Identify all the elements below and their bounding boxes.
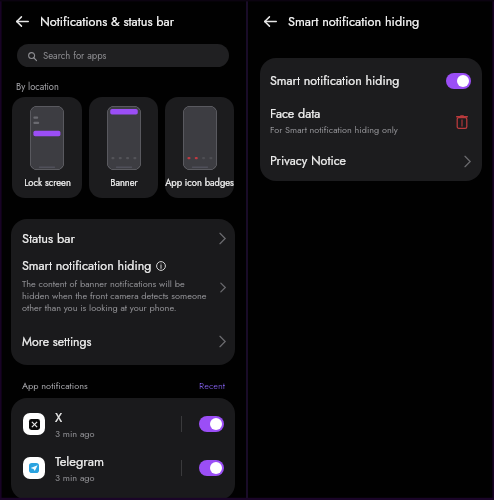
button[interactable]: X — [11, 402, 235, 446]
button[interactable]: Privacy Notice — [260, 141, 482, 181]
button[interactable]: Recent — [199, 379, 226, 392]
staticText: Search for apps — [43, 49, 107, 63]
staticText: Privacy Notice — [270, 152, 464, 170]
staticText: More settings — [22, 333, 219, 351]
button[interactable]: Toggle — [199, 460, 224, 476]
staticText: App notifications — [22, 379, 199, 392]
button[interactable]: Telegram — [11, 446, 235, 490]
staticText: X — [55, 408, 63, 427]
staticText: Telegram — [55, 452, 104, 471]
staticText: Recent — [199, 379, 226, 392]
staticText: Lock screen — [24, 176, 71, 190]
button[interactable]: Lock screen — [12, 97, 82, 198]
staticText: Smart notification hiding — [22, 257, 152, 275]
button[interactable]: Smart notification hiding — [260, 58, 482, 103]
staticText: Smart notification hiding — [288, 12, 420, 30]
staticText: Face data — [270, 105, 321, 123]
staticText: 3 min ago — [55, 427, 95, 440]
button[interactable]: App icon badges — [165, 97, 234, 198]
button[interactable]: More settings — [11, 318, 235, 365]
staticText: The content of banner notifications will… — [22, 277, 210, 314]
button[interactable]: Status bar — [11, 219, 235, 257]
button[interactable]: Smart notification hiding — [11, 257, 235, 318]
button[interactable]: Delete face data — [453, 113, 471, 131]
button[interactable]: Toggle — [199, 416, 224, 432]
staticText: Notifications & status bar — [40, 12, 174, 30]
button[interactable]: Search for apps — [17, 44, 229, 67]
button[interactable]: Back — [16, 13, 32, 29]
staticText: Status bar — [22, 229, 219, 247]
staticText: By location — [16, 80, 59, 93]
button[interactable]: Face data — [260, 103, 482, 141]
staticText: 3 min ago — [55, 471, 95, 484]
staticText: App icon badges — [165, 176, 234, 190]
staticText: Smart notification hiding — [270, 72, 446, 90]
staticText: Banner — [110, 176, 138, 190]
staticText: For Smart notification hiding only — [270, 123, 398, 136]
button[interactable]: Back — [264, 13, 280, 29]
button[interactable]: Toggle — [446, 73, 471, 89]
button[interactable]: Banner — [89, 97, 158, 198]
